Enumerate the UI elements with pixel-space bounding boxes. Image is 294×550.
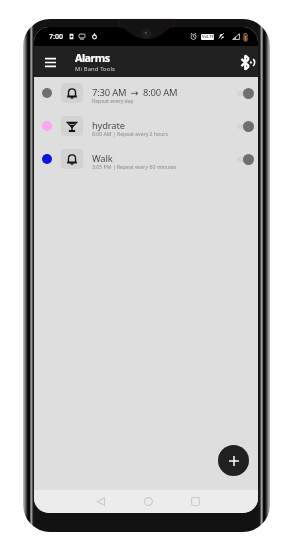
button[interactable]: Toggle alarm xyxy=(233,116,255,136)
button[interactable]: Add alarm xyxy=(218,445,249,476)
staticText: Walk xyxy=(92,152,113,165)
staticText: 7:30 AM → 8:00 AM xyxy=(92,86,178,99)
staticText: 7:00 xyxy=(49,32,63,42)
button[interactable]: Toggle alarm xyxy=(233,149,255,169)
button[interactable]: Open navigation menu xyxy=(39,51,61,73)
staticText: 8:00 AM | Repeat every 2 hours xyxy=(92,130,168,137)
button[interactable]: Walk xyxy=(34,142,258,175)
button[interactable]: hydrate xyxy=(34,109,258,142)
button[interactable]: Recent apps xyxy=(182,490,208,513)
staticText: hydrate xyxy=(92,119,125,132)
button[interactable]: 7:30 AM → 8:00 AM xyxy=(34,76,258,109)
button[interactable]: Back xyxy=(88,490,114,513)
button[interactable]: Bluetooth connected xyxy=(236,51,258,73)
button[interactable]: Home xyxy=(135,490,161,513)
button[interactable]: Toggle alarm xyxy=(233,83,255,103)
staticText: Alarms xyxy=(75,50,110,65)
staticText: 3:05 PM | Repeat every 60 minutes xyxy=(92,163,177,170)
staticText: Mi Band Tools xyxy=(75,65,115,73)
staticText: Repeat every day xyxy=(92,97,134,104)
staticText: VoLTE xyxy=(202,34,214,40)
